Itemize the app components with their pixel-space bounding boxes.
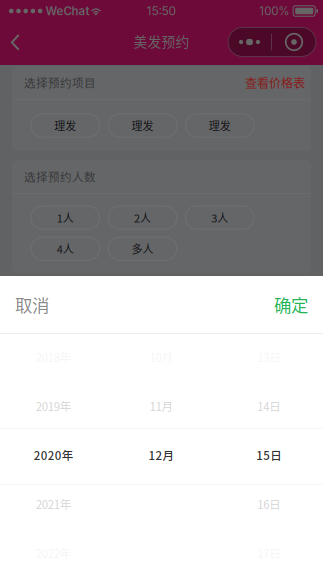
staticText: 17日 [257,545,281,561]
staticText: 美发预约 [133,31,189,51]
staticText: 15:50 [146,4,176,18]
staticText: 12月 [148,447,174,463]
button[interactable]: 理发 [31,114,100,137]
button[interactable]: 查看价格表 [245,74,305,91]
staticText: 1人 [57,210,74,225]
staticText: 13日 [257,349,281,365]
button[interactable]: Mini program menu [228,29,316,58]
staticText: 10月 [149,349,173,365]
button[interactable]: 1人 [31,206,100,229]
button[interactable]: Back [0,22,31,65]
staticText: 2019年 [36,398,72,414]
staticText: 2018年 [36,349,72,365]
staticText: 理发 [132,117,154,133]
staticText: 2人 [134,210,151,225]
staticText: 100% [259,4,289,18]
button[interactable]: 理发 [108,114,177,137]
staticText: 理发 [54,117,76,133]
staticText: 16日 [257,496,281,512]
button[interactable]: 确定 [259,276,323,333]
staticText: 2022年 [36,545,72,561]
staticText: 4人 [57,241,74,257]
staticText: 查看价格表 [245,74,305,91]
staticText: 15日 [256,447,282,463]
staticText: 取消 [15,292,49,317]
button[interactable]: 理发 [185,114,254,137]
button[interactable]: 取消 [0,276,64,333]
staticText: 确定 [274,292,308,317]
staticText: WeChat [45,4,89,18]
button[interactable]: 3人 [185,206,254,229]
staticText: 3人 [211,210,228,225]
staticText: 14日 [257,398,281,414]
staticText: 2021年 [36,496,72,512]
staticText: 2020年 [34,447,74,463]
button[interactable]: 4人 [31,237,100,260]
staticText: 多人 [132,241,154,257]
staticText: 11月 [149,398,173,414]
staticText: 选择预约人数 [24,168,96,185]
button[interactable]: 2人 [108,206,177,229]
staticText: 理发 [209,117,231,133]
button[interactable]: 多人 [108,237,177,260]
staticText: 选择预约项目 [24,74,96,91]
